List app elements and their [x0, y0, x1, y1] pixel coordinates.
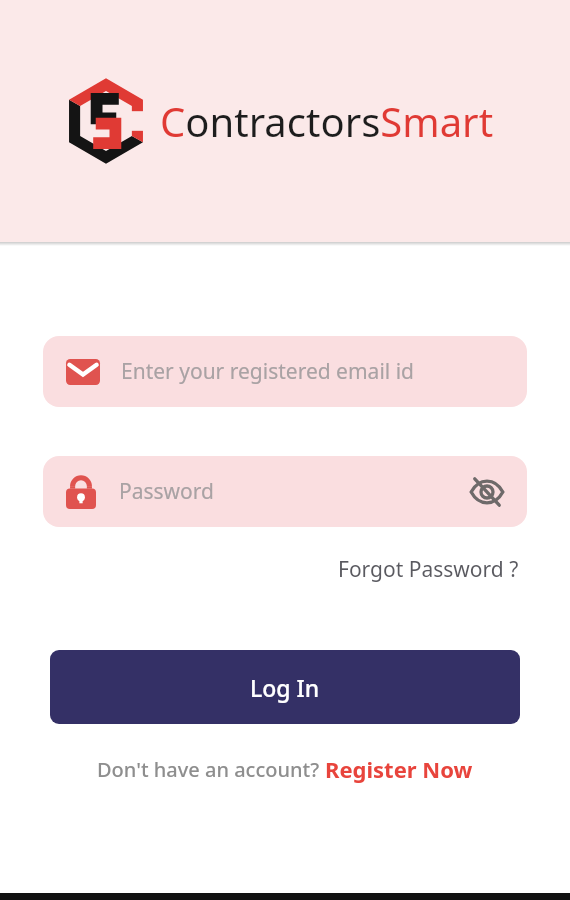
- staticText: Log In: [250, 672, 320, 703]
- button[interactable]: Register Now: [325, 754, 473, 784]
- staticText: Don't have an account?: [97, 756, 325, 783]
- staticText: Forgot Password ?: [338, 555, 519, 584]
- staticText: Enter your registered email id: [121, 357, 415, 386]
- button[interactable]: Password: [43, 456, 527, 527]
- button[interactable]: Show password: [465, 470, 509, 514]
- staticText: Register Now: [325, 754, 473, 784]
- staticText: Password: [119, 477, 465, 506]
- button[interactable]: Forgot Password ?: [334, 551, 523, 588]
- button[interactable]: Enter your registered email id: [43, 336, 527, 407]
- button[interactable]: Log In: [50, 650, 520, 724]
- staticText: ContractorsSmart: [160, 94, 494, 148]
